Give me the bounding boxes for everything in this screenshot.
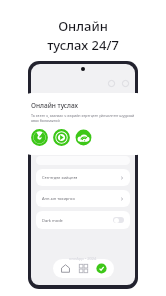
button[interactable]: Account	[96, 263, 107, 274]
button[interactable]: Апп-ын тохиргоо	[36, 190, 130, 207]
staticText: Dark mode	[42, 218, 63, 223]
staticText: Сэтгэгдэл хийцнээ	[42, 175, 78, 180]
button[interactable]: Home	[60, 263, 71, 274]
button[interactable]: Онлайн туслах	[22, 93, 146, 155]
button[interactable]: Cloud internet	[75, 129, 92, 146]
staticText: туслах 24/7	[47, 36, 119, 54]
button[interactable]: Сэтгэгдэл хийцнээ	[36, 169, 130, 186]
button[interactable]: Dark mode	[36, 211, 130, 229]
button[interactable]: Play	[53, 129, 70, 146]
staticText: oneApp • 2024	[69, 256, 97, 261]
staticText: Та хэзээ ч, хаанаас ч өөрийн хэрэгцээт ү…	[31, 113, 137, 123]
button[interactable]: Services	[78, 263, 89, 274]
staticText: Апп-ын тохиргоо	[42, 196, 75, 201]
staticText: Онлайн	[58, 17, 108, 35]
staticText: Онлайн туслах	[31, 101, 79, 110]
button[interactable]: Speed	[31, 129, 48, 146]
